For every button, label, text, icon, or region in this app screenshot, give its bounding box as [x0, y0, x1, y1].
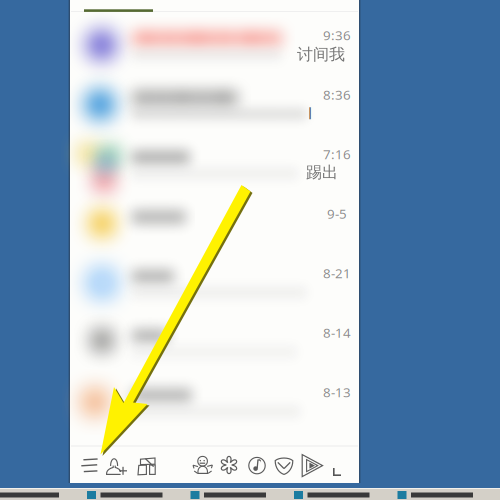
staticText: 讨间我 [297, 45, 345, 64]
button[interactable]: QQ Video [299, 453, 323, 477]
button[interactable]: Taskbar window [0, 489, 76, 500]
staticText: 7:16 [323, 145, 351, 163]
staticText: l [308, 102, 312, 124]
button[interactable]: Taskbar window [288, 489, 386, 500]
button[interactable]: Messages tab [84, 9, 153, 12]
button[interactable]: QQ Music [245, 453, 269, 477]
staticText: 8-14 [323, 324, 351, 341]
button[interactable]: Security [272, 453, 296, 477]
staticText: 8:36 [323, 86, 351, 103]
button[interactable]: Main menu [78, 453, 102, 477]
staticText: 8-21 [323, 264, 351, 282]
button[interactable]: QQ Pet [191, 453, 215, 477]
button[interactable]: Effects [217, 453, 241, 477]
button[interactable]: Taskbar window [185, 489, 283, 500]
button[interactable]: Group chat [134, 453, 158, 477]
staticText: 踢出 [306, 163, 338, 182]
staticText: 9:36 [323, 26, 351, 44]
staticText: 8-13 [323, 383, 351, 401]
button[interactable]: Taskbar window [392, 489, 490, 500]
staticText: 9-5 [327, 205, 347, 222]
button[interactable]: Taskbar window [81, 489, 179, 500]
button[interactable]: Add friend [105, 453, 129, 477]
